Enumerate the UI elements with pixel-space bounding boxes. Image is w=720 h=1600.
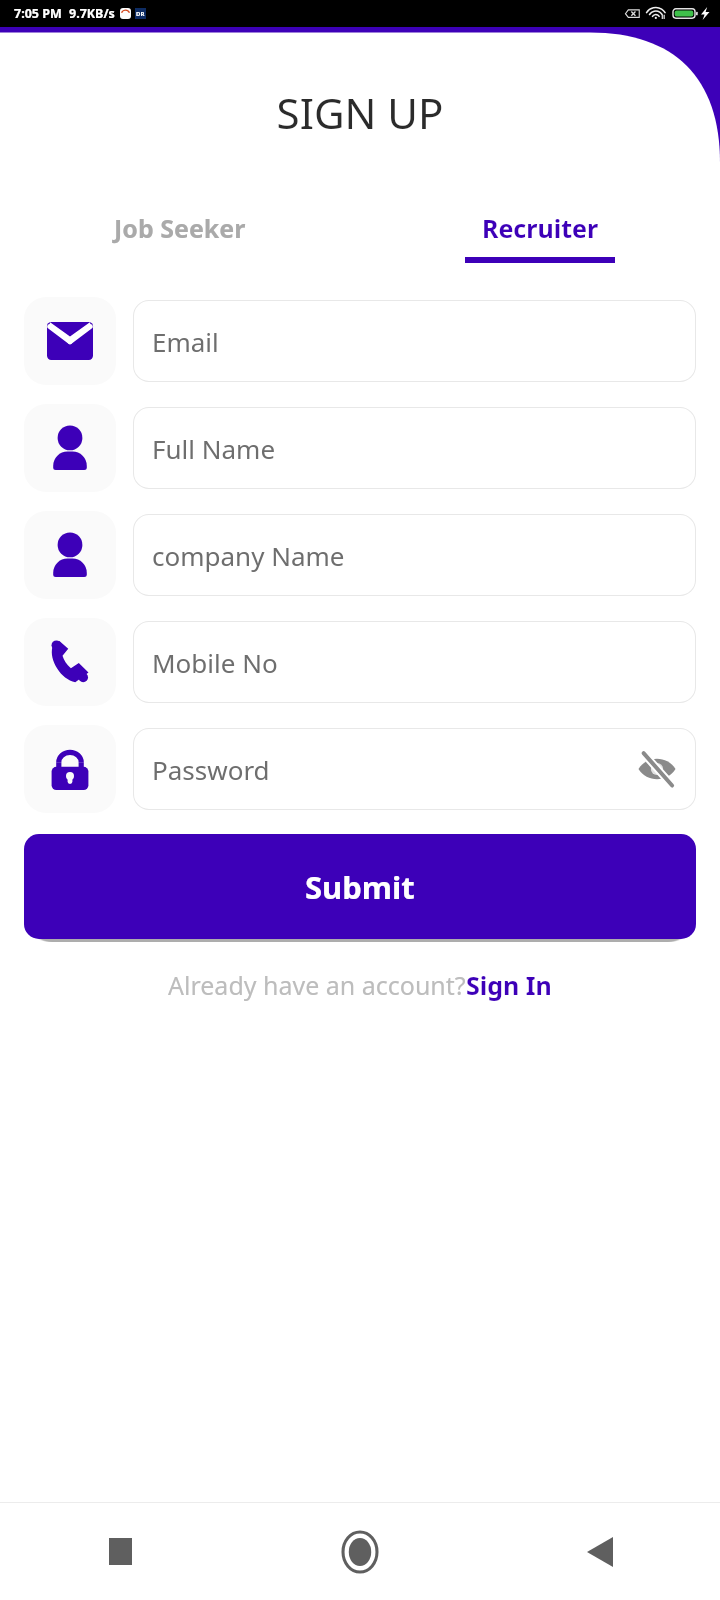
staticText: Job Seeker: [114, 211, 246, 245]
staticText: Sign In: [466, 968, 552, 1002]
staticText: Submit: [305, 866, 415, 908]
button[interactable]: Email: [133, 300, 696, 382]
button[interactable]: person: [24, 511, 116, 599]
staticText: Recruiter: [482, 211, 599, 245]
staticText: 9.7KB/s: [69, 5, 115, 22]
staticText: 7:05 PM: [14, 5, 62, 22]
button[interactable]: Full Name: [133, 407, 696, 489]
staticText: Email: [152, 324, 219, 359]
button[interactable]: Recents: [0, 1503, 240, 1600]
button[interactable]: Password: [133, 728, 696, 810]
staticText: Password: [152, 752, 270, 787]
staticText: SIGN UP: [0, 84, 720, 141]
button[interactable]: Job Seeker: [0, 198, 360, 264]
button[interactable]: Show password: [634, 746, 680, 792]
button[interactable]: phone: [24, 618, 116, 706]
staticText: DR: [136, 10, 145, 18]
staticText: Mobile No: [152, 645, 278, 680]
button[interactable]: lock: [24, 725, 116, 813]
button[interactable]: Submit: [24, 834, 696, 939]
button[interactable]: Sign In: [466, 968, 552, 1002]
staticText: company Name: [152, 538, 345, 573]
button[interactable]: Home: [240, 1503, 480, 1600]
button[interactable]: company Name: [133, 514, 696, 596]
staticText: Full Name: [152, 431, 276, 466]
button[interactable]: person: [24, 404, 116, 492]
button[interactable]: Recruiter: [360, 198, 720, 264]
staticText: Already have an account?: [168, 968, 466, 1002]
button[interactable]: Mobile No: [133, 621, 696, 703]
button[interactable]: Back: [480, 1503, 720, 1600]
button[interactable]: mail: [24, 297, 116, 385]
